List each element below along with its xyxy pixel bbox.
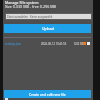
staticText: settings.json xyxy=(5,42,22,46)
button[interactable]: Upload xyxy=(4,24,91,33)
button[interactable]: settings.json xyxy=(4,40,92,48)
button[interactable]: Create and edit new file xyxy=(4,90,91,98)
staticText: Datei auswählen Keine ausgewählt xyxy=(7,15,53,19)
button[interactable]: Datei auswählen Keine ausgewählt xyxy=(6,14,91,19)
staticText: 0.02 MB xyxy=(74,42,85,46)
staticText: Upload xyxy=(42,26,54,31)
staticText: Manage File system xyxy=(5,0,39,5)
staticText: Create and edit new file xyxy=(29,92,66,96)
staticText: 2024-06-12 10:41:55 xyxy=(41,42,67,46)
staticText: Size 0.330 MB - free 0.296 MB xyxy=(5,4,56,9)
